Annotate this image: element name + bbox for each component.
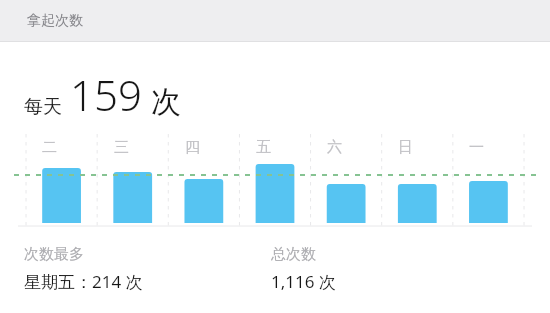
staticText: 159 [70,66,142,123]
staticText: 三 [114,138,129,157]
staticText: 每天 [24,95,62,119]
staticText: 次 [151,83,181,121]
staticText: 总次数 [271,245,316,264]
staticText: 1,116 次 [271,270,336,293]
button[interactable]: 总次数 [271,245,336,293]
staticText: 拿起次数 [27,12,83,30]
button[interactable]: 拿起次数 [0,0,550,41]
staticText: 次数最多 [24,245,84,264]
staticText: 一 [469,138,484,157]
staticText: 日 [398,138,413,157]
staticText: 星期五：214 次 [24,270,143,293]
staticText: 五 [256,138,271,157]
staticText: 四 [185,138,200,157]
staticText: 六 [327,138,342,157]
staticText: 二 [42,138,57,157]
button[interactable]: 次数最多 [24,245,271,293]
